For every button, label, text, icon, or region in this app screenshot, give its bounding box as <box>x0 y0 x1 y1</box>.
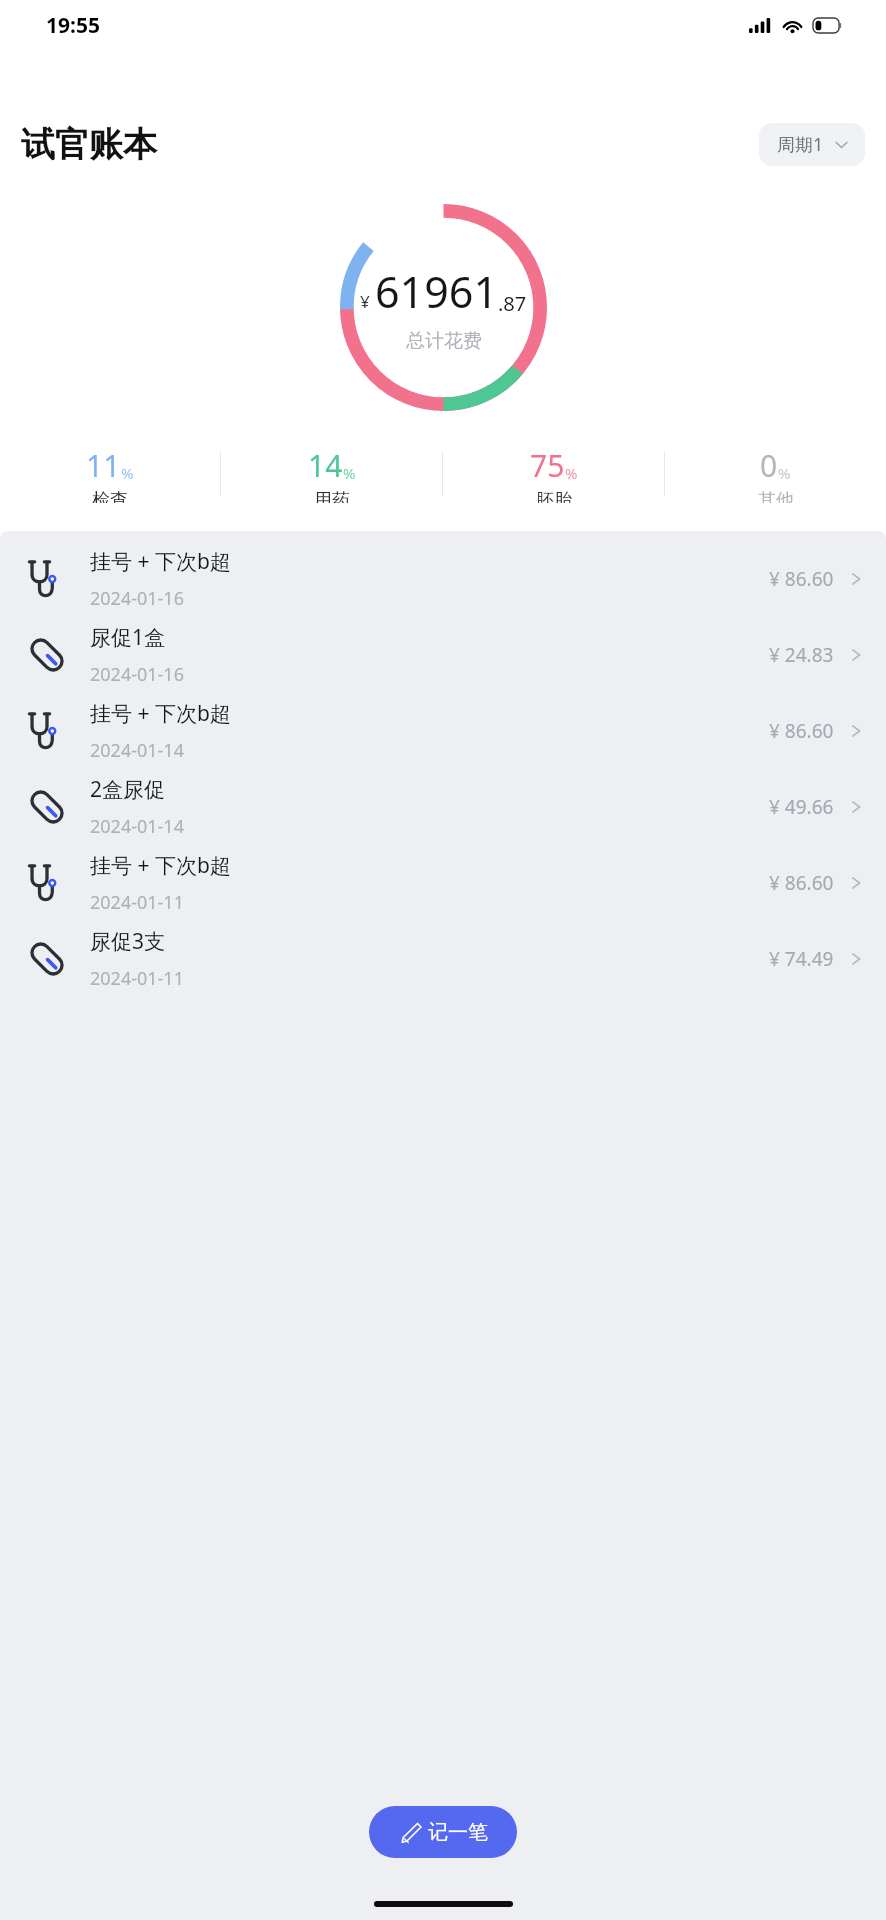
staticText: % <box>778 463 791 483</box>
staticText: 19:55 <box>46 11 100 40</box>
staticText: 尿促1盒 <box>90 623 166 652</box>
button[interactable]: 尿促3支 <box>0 921 886 997</box>
staticText: 挂号 + 下次b超 <box>90 699 231 728</box>
staticText: ¥ 86.60 <box>769 718 834 744</box>
staticText: 2024-01-16 <box>90 586 184 611</box>
staticText: 2024-01-14 <box>90 814 184 839</box>
staticText: 记一笔 <box>428 1820 488 1845</box>
staticText: 其他 <box>758 489 794 503</box>
staticText: % <box>565 463 578 483</box>
button[interactable]: 记一笔 <box>369 1806 517 1858</box>
other: Select cycle <box>834 137 849 152</box>
staticText: 2024-01-11 <box>90 966 184 991</box>
button[interactable]: 挂号 + 下次b超 <box>0 541 886 617</box>
button[interactable]: 2盒尿促 <box>0 769 886 845</box>
staticText: % <box>343 463 356 483</box>
staticText: 61961 <box>375 262 498 321</box>
staticText: 周期1 <box>777 132 824 157</box>
staticText: ¥ 49.66 <box>769 794 834 820</box>
other: Open detail <box>848 875 864 891</box>
button[interactable]: 0 <box>665 445 886 503</box>
staticText: 2盒尿促 <box>90 775 166 804</box>
button[interactable]: 11 <box>0 445 220 503</box>
staticText: ¥ 86.60 <box>769 870 834 896</box>
staticText: 2024-01-16 <box>90 662 184 687</box>
staticText: 胚胎 <box>536 489 572 503</box>
staticText: ¥ <box>360 290 370 313</box>
other: Open detail <box>848 647 864 663</box>
staticText: ¥ 24.83 <box>769 642 834 668</box>
staticText: 75 <box>530 445 565 486</box>
staticText: 总计花费 <box>406 329 482 353</box>
other: Open detail <box>848 571 864 587</box>
staticText: .87 <box>498 290 527 317</box>
staticText: 挂号 + 下次b超 <box>90 851 231 880</box>
staticText: 尿促3支 <box>90 927 166 956</box>
staticText: 试官账本 <box>21 123 157 166</box>
button[interactable]: 挂号 + 下次b超 <box>0 693 886 769</box>
staticText: 11 <box>86 445 121 486</box>
button[interactable]: 周期1 <box>759 123 865 166</box>
button[interactable]: 尿促1盒 <box>0 617 886 693</box>
staticText: % <box>121 463 134 483</box>
staticText: ¥ 74.49 <box>769 946 834 972</box>
staticText: 用药 <box>314 489 350 503</box>
staticText: 检查 <box>92 489 128 503</box>
staticText: 2024-01-14 <box>90 738 184 763</box>
button[interactable]: 14 <box>221 445 442 503</box>
staticText: 14 <box>308 445 343 486</box>
staticText: ¥ 86.60 <box>769 566 834 592</box>
button[interactable]: 挂号 + 下次b超 <box>0 845 886 921</box>
staticText: 2024-01-11 <box>90 890 184 915</box>
other: Open detail <box>848 799 864 815</box>
other: Open detail <box>848 723 864 739</box>
other: Open detail <box>848 951 864 967</box>
staticText: 挂号 + 下次b超 <box>90 547 231 576</box>
button[interactable]: 75 <box>443 445 664 503</box>
staticText: 0 <box>760 445 778 486</box>
